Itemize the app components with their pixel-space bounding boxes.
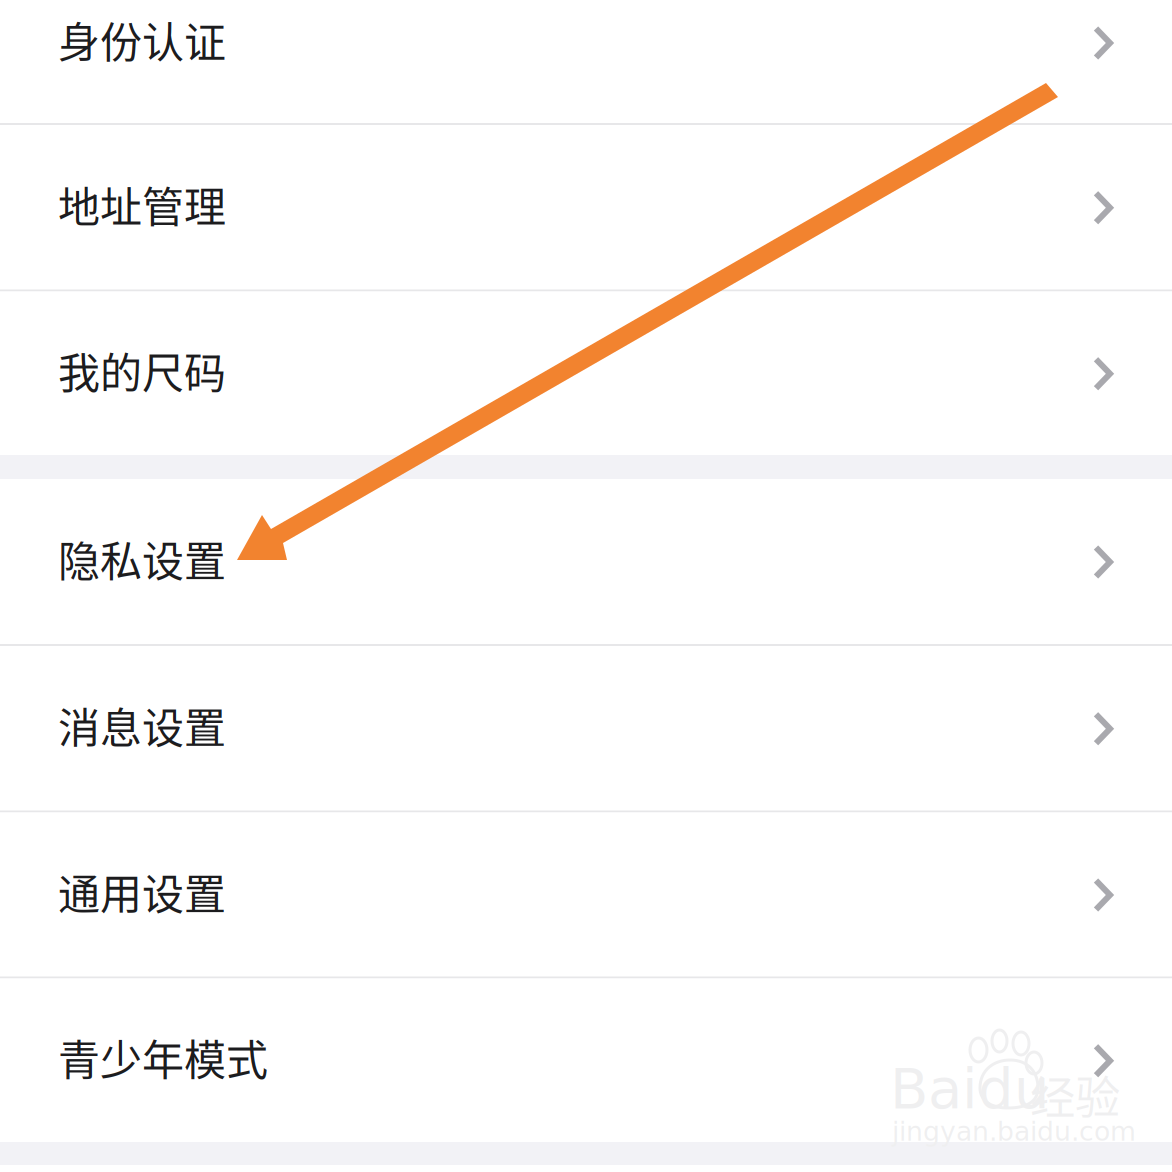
staticText: 青少年模式	[58, 1027, 268, 1088]
staticText: 隐私设置	[58, 528, 226, 589]
staticText: 我的尺码	[58, 340, 226, 401]
button[interactable]: 通用设置	[0, 812, 1172, 976]
button[interactable]: 身份认证	[0, 0, 1172, 123]
staticText: 通用设置	[58, 861, 226, 922]
staticText: jingyan.baidu.com	[892, 1116, 1136, 1147]
staticText: 地址管理	[58, 174, 226, 235]
button[interactable]: 青少年模式	[0, 978, 1172, 1142]
button[interactable]: 我的尺码	[0, 291, 1172, 455]
button[interactable]: 地址管理	[0, 125, 1172, 289]
staticText: 消息设置	[58, 695, 226, 756]
button[interactable]: 消息设置	[0, 646, 1172, 810]
staticText: 身份认证	[58, 9, 226, 70]
staticText: Baidu	[890, 1056, 1049, 1121]
button[interactable]: 隐私设置	[0, 479, 1172, 644]
staticText: 经验	[1030, 1062, 1120, 1128]
